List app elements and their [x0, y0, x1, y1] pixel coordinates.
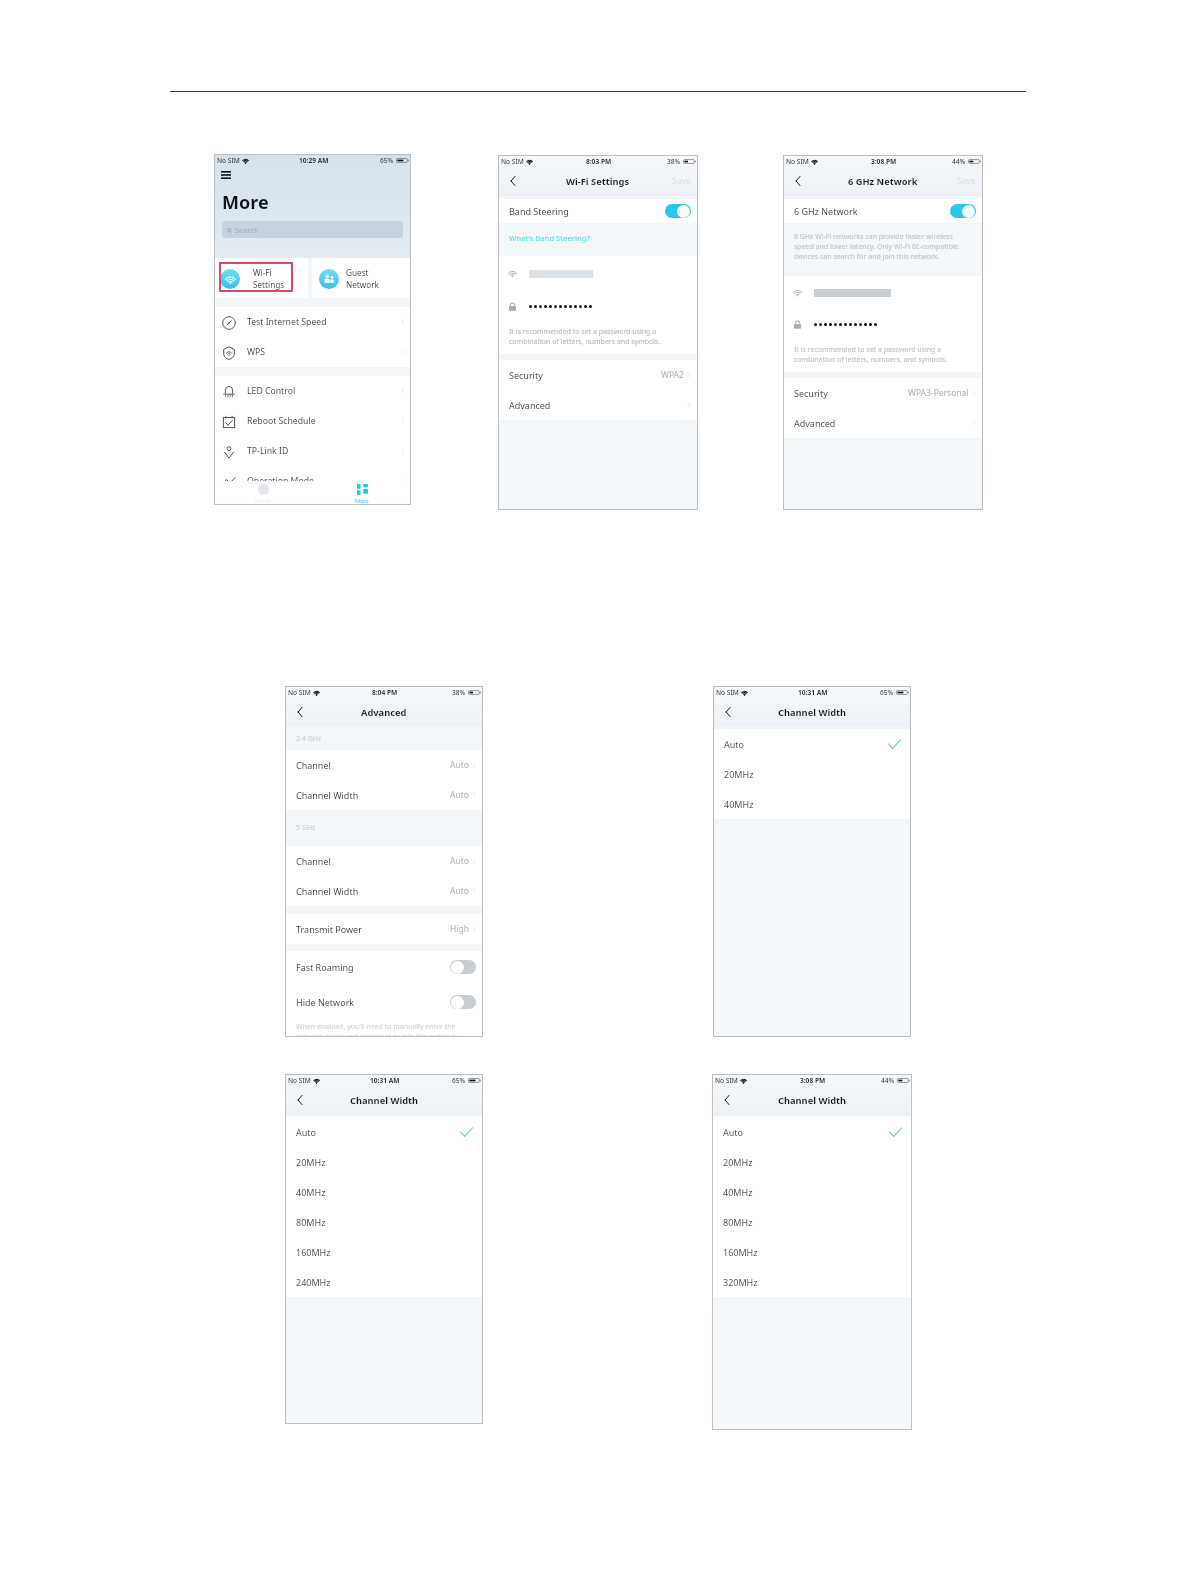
staticText: 65%	[452, 1076, 466, 1085]
staticText: No SIM	[501, 157, 524, 166]
button[interactable]: Operation Mode	[214, 466, 411, 496]
button[interactable]: Search	[222, 221, 403, 238]
staticText: 65%	[380, 156, 394, 165]
staticText: 160MHz	[723, 1246, 758, 1258]
staticText: Wi-Fi Settings	[566, 175, 630, 188]
button[interactable]: TP-Link ID	[214, 436, 411, 466]
staticText: 80MHz	[296, 1216, 326, 1228]
button[interactable]: 40MHz	[285, 1177, 483, 1207]
staticText: No SIM	[715, 1076, 738, 1085]
button[interactable]: Advanced	[498, 390, 698, 420]
button[interactable]: 6 GHz Network	[783, 199, 983, 223]
staticText: Channel Width	[350, 1094, 419, 1107]
staticText: Settings	[253, 279, 285, 290]
button[interactable]: Channel	[285, 846, 483, 876]
button[interactable]: Switch on	[665, 204, 691, 218]
staticText: Channel Width	[296, 885, 359, 897]
button[interactable]: 20MHz	[285, 1147, 483, 1177]
staticText: 6 GHz Network	[794, 205, 858, 217]
staticText: Auto	[450, 855, 469, 867]
button[interactable]: Back	[294, 1094, 306, 1106]
button[interactable]: 240MHz	[285, 1267, 483, 1297]
staticText: High	[450, 923, 469, 935]
staticText: WPA3-Personal	[908, 387, 969, 399]
button[interactable]: Test Internet Speed	[214, 307, 411, 337]
button[interactable]	[783, 276, 983, 309]
button[interactable]: Back	[294, 706, 306, 718]
button[interactable]: What's Band Steering?	[509, 230, 590, 243]
button[interactable]: Back	[792, 175, 804, 187]
button[interactable]: LED Control	[214, 376, 411, 406]
button[interactable]: 40MHz	[712, 1177, 912, 1207]
button[interactable]	[498, 256, 698, 291]
button[interactable]: Home	[214, 481, 312, 505]
staticText: 3:08 PM	[871, 157, 897, 166]
button[interactable]: 160MHz	[712, 1237, 912, 1267]
button[interactable]: Guest	[312, 258, 411, 298]
button[interactable]: Reboot Schedule	[214, 406, 411, 436]
button[interactable]: Hide Network	[285, 982, 483, 1021]
staticText: 40MHz	[724, 798, 754, 810]
staticText: 38%	[667, 157, 681, 166]
button[interactable]: 80MHz	[712, 1207, 912, 1237]
button[interactable]: Back	[507, 175, 519, 187]
button[interactable]: Security	[783, 378, 983, 408]
staticText: 2.4 GHz	[296, 734, 322, 744]
button[interactable]: Switch off	[450, 995, 476, 1009]
staticText: No SIM	[716, 688, 739, 697]
button[interactable]: 40MHz	[713, 789, 911, 819]
button[interactable]: Auto	[285, 1117, 483, 1147]
staticText: 20MHz	[723, 1156, 753, 1168]
staticText: WPS	[247, 346, 266, 358]
staticText: Auto	[450, 885, 469, 897]
staticText: No SIM	[217, 156, 240, 165]
staticText: Save	[957, 175, 976, 187]
staticText: 160MHz	[296, 1246, 331, 1258]
button[interactable]: Channel Width	[285, 876, 483, 906]
staticText: 8:04 PM	[372, 688, 398, 697]
button[interactable]: Save	[957, 175, 976, 187]
staticText: Band Steering	[509, 205, 569, 217]
button[interactable]: 20MHz	[713, 759, 911, 789]
staticText: It is recommended to set a password usin…	[794, 345, 974, 365]
button[interactable]: Switch off	[450, 960, 476, 974]
staticText: LED Control	[247, 385, 296, 397]
button[interactable]: Band Steering	[498, 199, 698, 223]
button[interactable]	[498, 291, 698, 322]
button[interactable]: Back	[722, 706, 734, 718]
staticText: Security	[509, 369, 543, 381]
button[interactable]: 160MHz	[285, 1237, 483, 1267]
staticText: Auto	[723, 1126, 744, 1138]
button[interactable]: Fast Roaming	[285, 951, 483, 982]
staticText: Channel	[296, 759, 331, 771]
button[interactable]: Wi-Fi	[214, 258, 308, 298]
button[interactable]: Channel	[285, 750, 483, 780]
staticText: 10:29 AM	[299, 156, 329, 165]
staticText: Channel Width	[778, 1094, 847, 1107]
button[interactable]: 320MHz	[712, 1267, 912, 1297]
button[interactable]: Auto	[713, 729, 911, 759]
staticText: 20MHz	[724, 768, 754, 780]
staticText: Advanced	[361, 706, 407, 719]
button[interactable]: Switch on	[950, 204, 976, 218]
button[interactable]: Transmit Power	[285, 914, 483, 944]
staticText: 6 GHz Wi-Fi networks can provide faster …	[794, 232, 974, 262]
button[interactable]: Save	[672, 175, 691, 187]
button[interactable]: Back	[721, 1094, 733, 1106]
button[interactable]: 20MHz	[712, 1147, 912, 1177]
button[interactable]: More	[312, 481, 411, 505]
staticText: Advanced	[794, 417, 836, 429]
button[interactable]: WPS	[214, 337, 411, 367]
button[interactable]: Security	[498, 360, 698, 390]
staticText: Network	[346, 279, 379, 290]
button[interactable]: Advanced	[783, 408, 983, 438]
staticText: It is recommended to set a password usin…	[509, 327, 689, 347]
button[interactable]: Menu	[221, 167, 237, 183]
button[interactable]: Auto	[712, 1117, 912, 1147]
staticText: Wi-Fi	[253, 267, 272, 278]
button[interactable]: 80MHz	[285, 1207, 483, 1237]
button[interactable]: Channel Width	[285, 780, 483, 810]
button[interactable]	[783, 309, 983, 340]
staticText: Reboot Schedule	[247, 415, 316, 427]
staticText: 44%	[881, 1076, 895, 1085]
